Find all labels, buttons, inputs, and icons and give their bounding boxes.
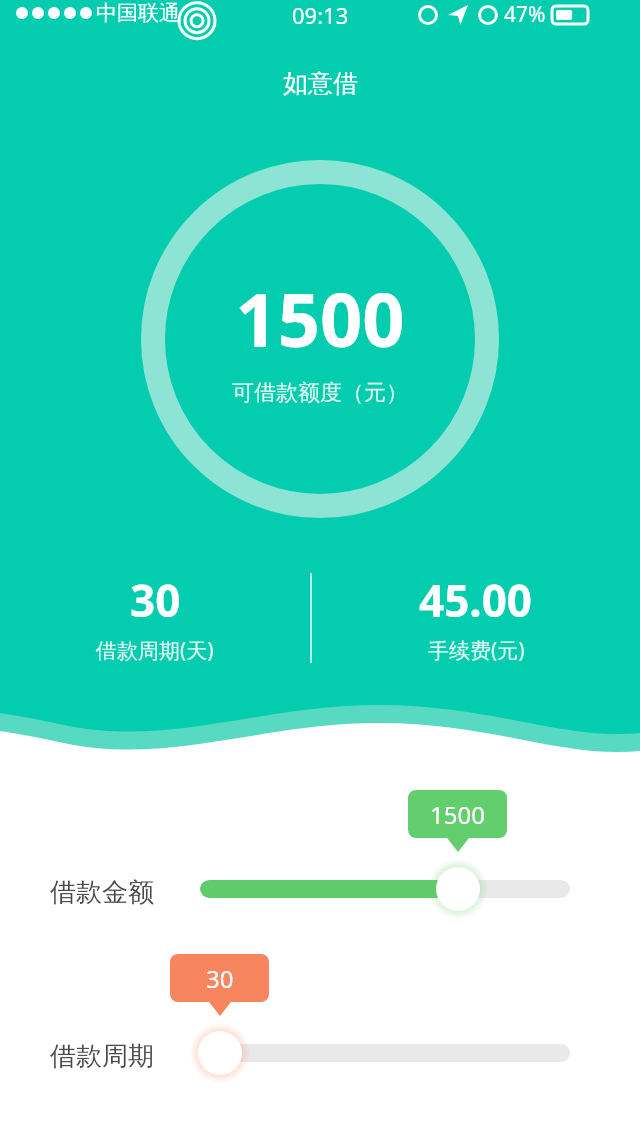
button[interactable]: 借款金额 thumb [428,859,488,919]
staticText: 1500 [235,268,405,369]
button[interactable]: 借款周期 thumb [190,1023,250,1083]
staticText: 借款周期(天) [96,636,214,665]
button[interactable]: 借款金额 [200,880,570,898]
staticText: 借款金额 [50,876,154,909]
button[interactable]: 借款周期 [200,1044,570,1062]
staticText: 09:13 [292,0,349,30]
staticText: 1500 [430,798,485,831]
staticText: 中国联通 [96,0,180,26]
staticText: 可借款额度（元） [232,379,408,407]
button[interactable]: 30 [170,954,269,1002]
staticText: 借款周期 [50,1040,154,1073]
staticText: 47% [504,0,546,29]
staticText: 如意借 [283,68,358,99]
staticText: 30 [130,570,181,630]
staticText: 45.00 [419,570,533,630]
staticText: 手续费(元) [428,636,525,665]
staticText: 30 [206,962,234,995]
button[interactable]: 1500 [408,790,507,838]
